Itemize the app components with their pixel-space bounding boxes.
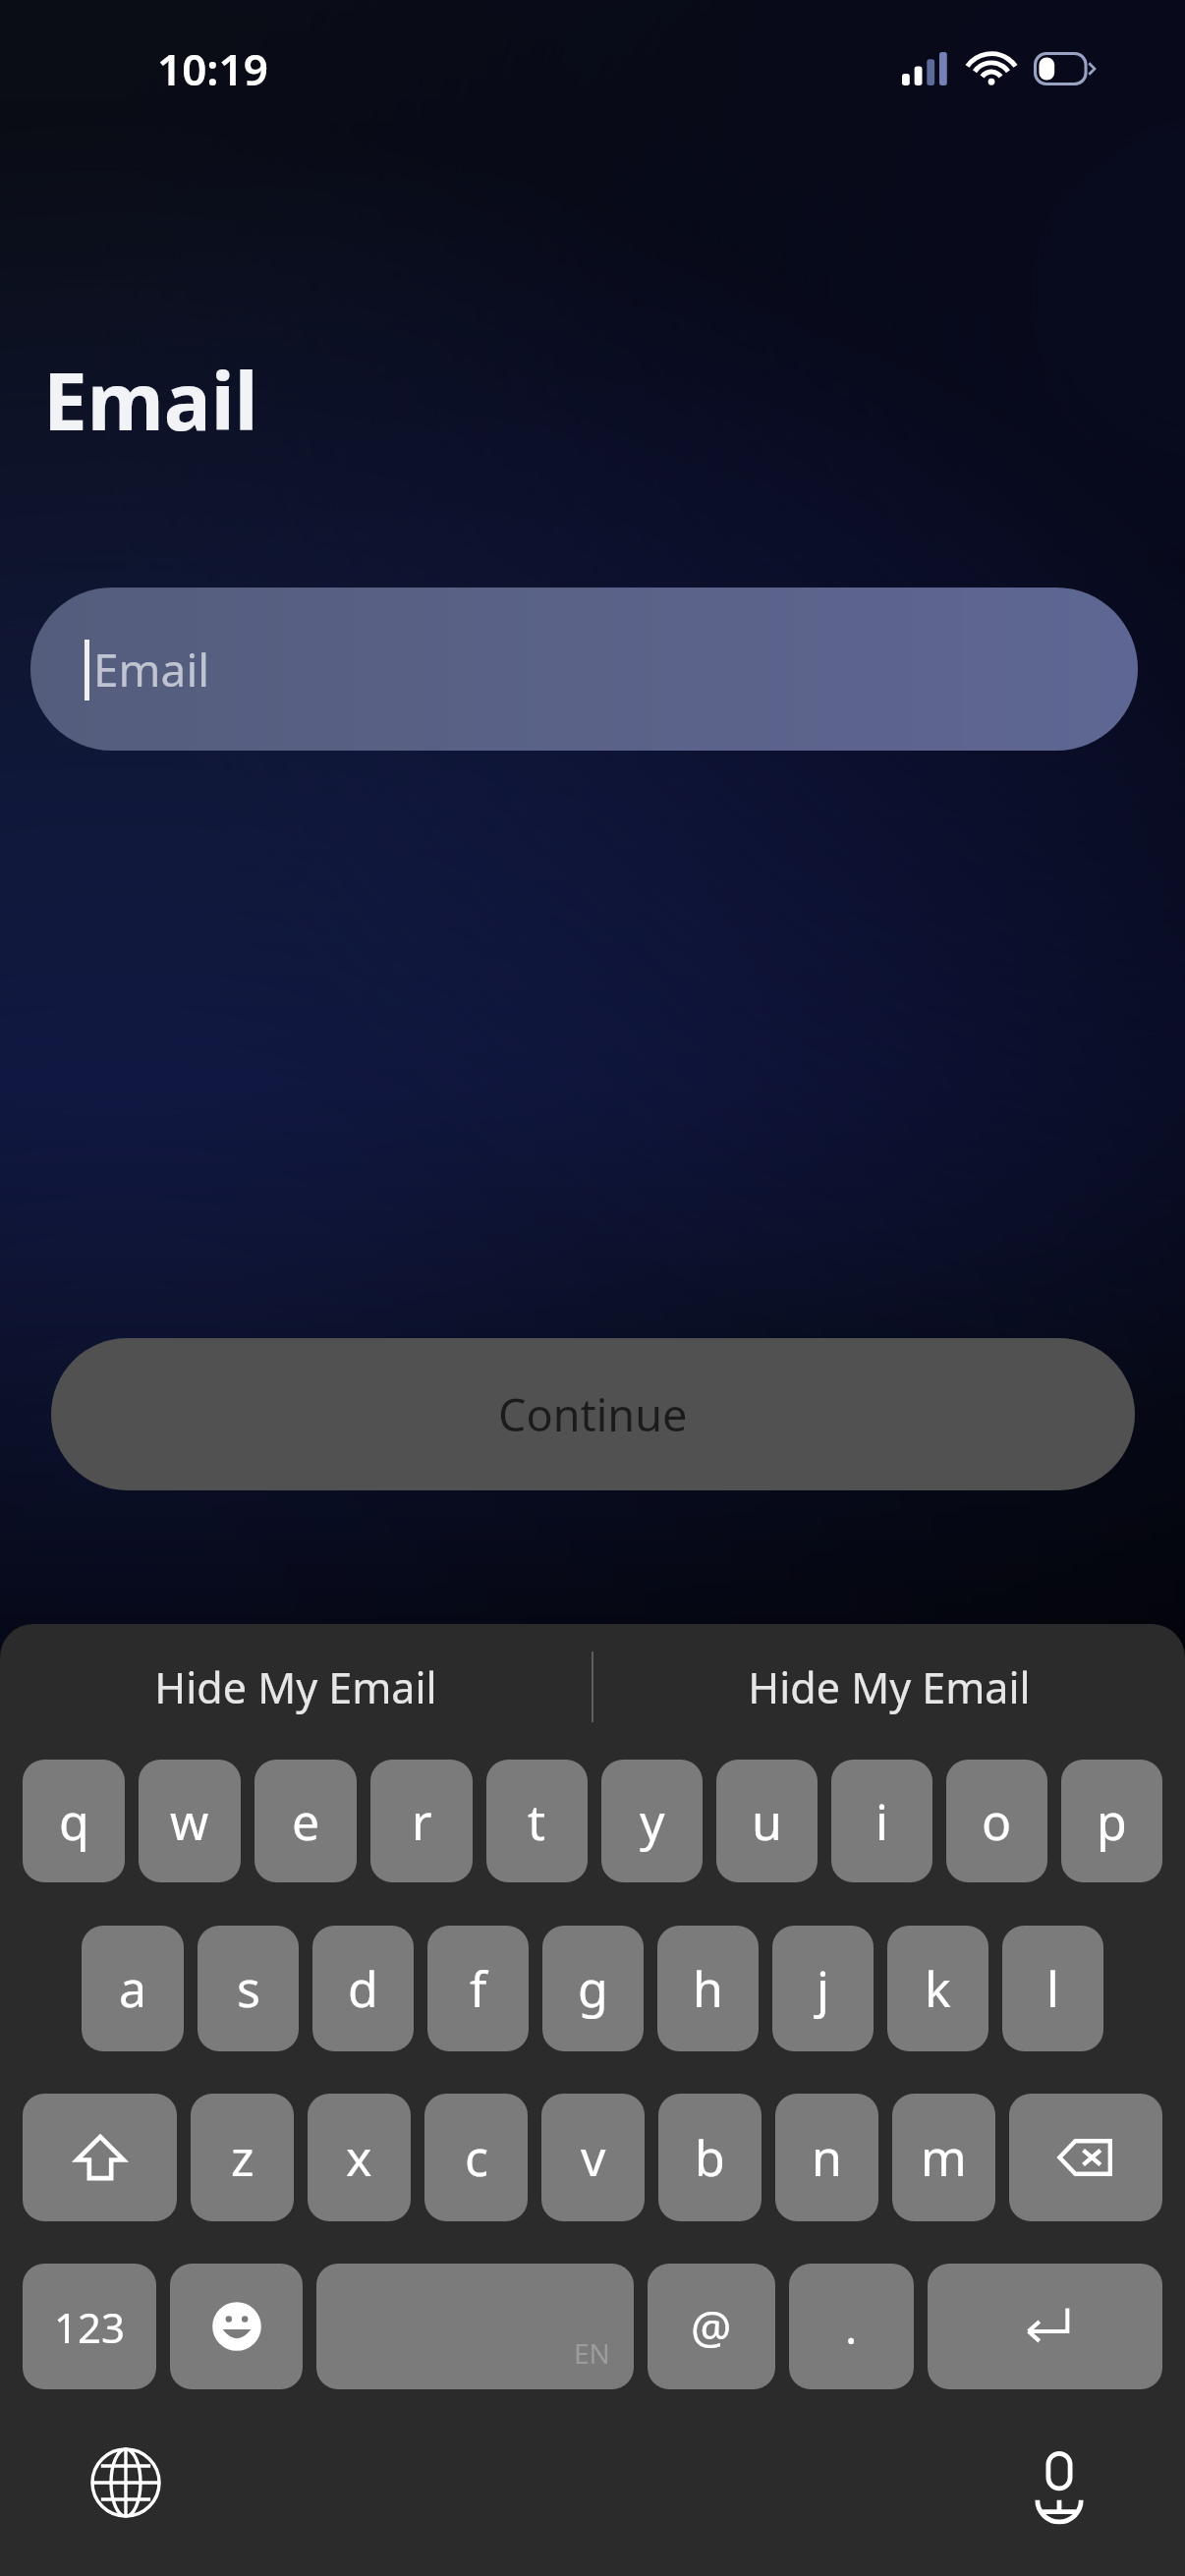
staticText: i <box>875 1788 888 1855</box>
button[interactable]: Enter <box>928 2264 1162 2389</box>
button[interactable]: u <box>716 1760 818 1882</box>
staticText: @ <box>691 2296 732 2358</box>
button[interactable]: v <box>541 2094 645 2221</box>
staticText: Continue <box>498 1384 688 1444</box>
button[interactable]: z <box>191 2094 294 2221</box>
button[interactable]: EN <box>316 2264 634 2389</box>
staticText: q <box>59 1788 89 1855</box>
button[interactable]: j <box>772 1926 874 2051</box>
staticText: Hide My Email <box>154 1658 437 1716</box>
button[interactable]: q <box>23 1760 125 1882</box>
staticText: w <box>170 1788 209 1855</box>
staticText: s <box>237 1955 260 2022</box>
staticText: t <box>528 1788 546 1855</box>
staticText: 10:19 <box>157 39 268 98</box>
button[interactable]: m <box>892 2094 995 2221</box>
button[interactable]: s <box>197 1926 299 2051</box>
button[interactable]: e <box>254 1760 357 1882</box>
staticText: m <box>921 2124 967 2191</box>
button[interactable]: Continue <box>51 1338 1135 1490</box>
button[interactable]: Shift <box>23 2094 177 2221</box>
staticText: p <box>1097 1788 1127 1855</box>
button[interactable]: y <box>601 1760 703 1882</box>
staticText: e <box>292 1788 320 1855</box>
staticText: z <box>231 2124 254 2191</box>
staticText: v <box>581 2124 606 2191</box>
button[interactable]: Voice input <box>1012 2436 1106 2530</box>
button[interactable]: Hide My Email <box>0 1624 592 1750</box>
button[interactable]: l <box>1002 1926 1103 2051</box>
staticText: n <box>812 2124 842 2191</box>
staticText: o <box>982 1788 1012 1855</box>
staticText: x <box>346 2124 372 2191</box>
staticText: a <box>119 1955 147 2022</box>
button[interactable]: Hide My Email <box>593 1624 1185 1750</box>
staticText: b <box>695 2124 725 2191</box>
button[interactable]: Emoji <box>170 2264 303 2389</box>
button[interactable]: x <box>308 2094 411 2221</box>
staticText: Email <box>93 639 210 700</box>
button[interactable]: i <box>831 1760 932 1882</box>
button[interactable]: p <box>1061 1760 1162 1882</box>
staticText: f <box>470 1955 487 2022</box>
button[interactable]: Backspace <box>1009 2094 1162 2221</box>
staticText: r <box>412 1788 432 1855</box>
staticText: Email <box>43 346 258 453</box>
staticText: d <box>348 1955 378 2022</box>
staticText: 123 <box>54 2299 126 2355</box>
button[interactable]: n <box>775 2094 878 2221</box>
button[interactable]: a <box>82 1926 184 2051</box>
button[interactable]: d <box>312 1926 414 2051</box>
button[interactable]: f <box>427 1926 529 2051</box>
button[interactable]: b <box>658 2094 762 2221</box>
staticText: u <box>752 1788 782 1855</box>
button[interactable]: 123 <box>23 2264 156 2389</box>
staticText: h <box>693 1955 723 2022</box>
staticText: g <box>578 1955 608 2022</box>
staticText: Hide My Email <box>748 1658 1031 1716</box>
button[interactable]: c <box>424 2094 528 2221</box>
button[interactable]: w <box>139 1760 241 1882</box>
button[interactable]: t <box>486 1760 588 1882</box>
button[interactable]: h <box>657 1926 759 2051</box>
button[interactable]: g <box>542 1926 644 2051</box>
staticText: c <box>465 2124 488 2191</box>
button[interactable]: Email <box>30 588 1138 751</box>
staticText: EN <box>574 2334 610 2372</box>
button[interactable]: Change keyboard language <box>79 2436 173 2530</box>
staticText: l <box>1046 1955 1059 2022</box>
button[interactable]: r <box>370 1760 473 1882</box>
staticText: y <box>640 1788 665 1855</box>
staticText: j <box>817 1955 829 2022</box>
staticText: . <box>845 2296 858 2358</box>
button[interactable]: k <box>887 1926 988 2051</box>
button[interactable]: @ <box>648 2264 775 2389</box>
button[interactable]: . <box>789 2264 914 2389</box>
staticText: k <box>925 1955 951 2022</box>
button[interactable]: o <box>946 1760 1047 1882</box>
